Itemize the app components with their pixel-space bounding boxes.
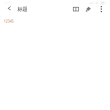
button[interactable]: Annotate [83, 4, 97, 14]
button[interactable]: Reading mode [69, 4, 83, 14]
button[interactable]: More [97, 4, 106, 14]
staticText: 12345 [4, 20, 14, 23]
button[interactable]: Back [4, 4, 15, 14]
button[interactable]: 标题 [15, 5, 27, 14]
staticText: 标题 [17, 6, 27, 12]
